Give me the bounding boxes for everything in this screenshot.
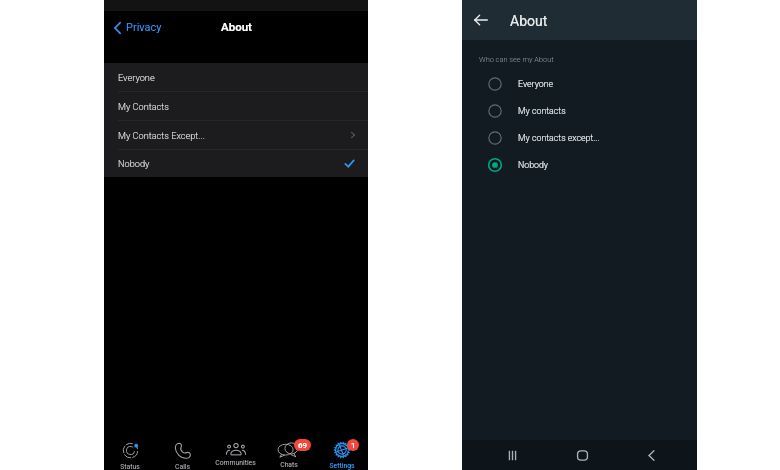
button[interactable]: My contacts [462, 97, 697, 124]
staticText: Who can see my About [479, 55, 554, 64]
button[interactable]: Back [638, 442, 664, 468]
button[interactable]: Communities [209, 428, 262, 470]
button[interactable]: Back [470, 9, 492, 31]
staticText: Nobody [518, 160, 549, 170]
button[interactable]: Everyone [462, 70, 697, 97]
staticText: Calls [175, 463, 190, 470]
button[interactable]: Nobody [104, 150, 368, 177]
other: Chats [278, 442, 299, 457]
staticText: My contacts except... [518, 133, 600, 143]
staticText: Communities [215, 459, 256, 467]
other: Communities [226, 442, 246, 455]
button[interactable]: My Contacts Except... [104, 121, 368, 149]
button[interactable]: Calls [156, 428, 209, 470]
button[interactable]: Nobody [462, 151, 697, 178]
staticText: 69 [298, 441, 308, 450]
button[interactable]: Privacy [113, 19, 163, 36]
staticText: Settings [329, 462, 355, 470]
staticText: My contacts [518, 106, 566, 116]
button[interactable]: My contacts except... [462, 124, 697, 151]
button[interactable]: Status [104, 428, 156, 470]
other: Calls [174, 442, 191, 459]
staticText: Privacy [126, 21, 162, 34]
button[interactable]: My Contacts [104, 92, 368, 120]
button[interactable]: Settings [315, 428, 368, 470]
staticText: Everyone [518, 79, 554, 89]
button[interactable]: Chats [262, 428, 315, 470]
other: Settings [334, 442, 350, 458]
staticText: Everyone [118, 72, 155, 83]
staticText: Status [120, 463, 140, 470]
button[interactable]: Recent apps [499, 442, 525, 468]
staticText: My Contacts [118, 101, 169, 112]
button[interactable]: Home [569, 442, 595, 468]
staticText: About [510, 13, 548, 29]
staticText: Chats [280, 461, 298, 469]
staticText: Nobody [118, 158, 150, 169]
staticText: 1 [351, 441, 356, 450]
staticText: About [221, 20, 252, 33]
other: Status [122, 442, 139, 459]
staticText: My Contacts Except... [118, 130, 205, 141]
button[interactable]: Everyone [104, 63, 368, 91]
